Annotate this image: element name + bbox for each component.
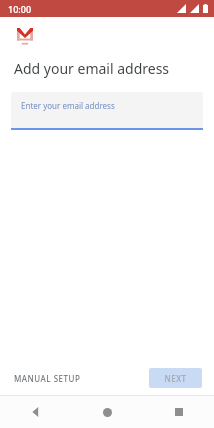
button[interactable]: Enter your email address <box>11 92 203 128</box>
staticText: 10:00 <box>8 3 32 15</box>
button[interactable]: Recent apps <box>143 396 214 428</box>
button[interactable]: MANUAL SETUP <box>0 367 87 390</box>
button[interactable]: Back <box>0 396 72 428</box>
staticText: NEXT <box>164 373 187 384</box>
button[interactable]: NEXT <box>149 368 202 388</box>
staticText: Enter your email address <box>21 100 115 111</box>
button[interactable]: Home <box>72 396 143 428</box>
staticText: Add your email address <box>14 59 170 78</box>
